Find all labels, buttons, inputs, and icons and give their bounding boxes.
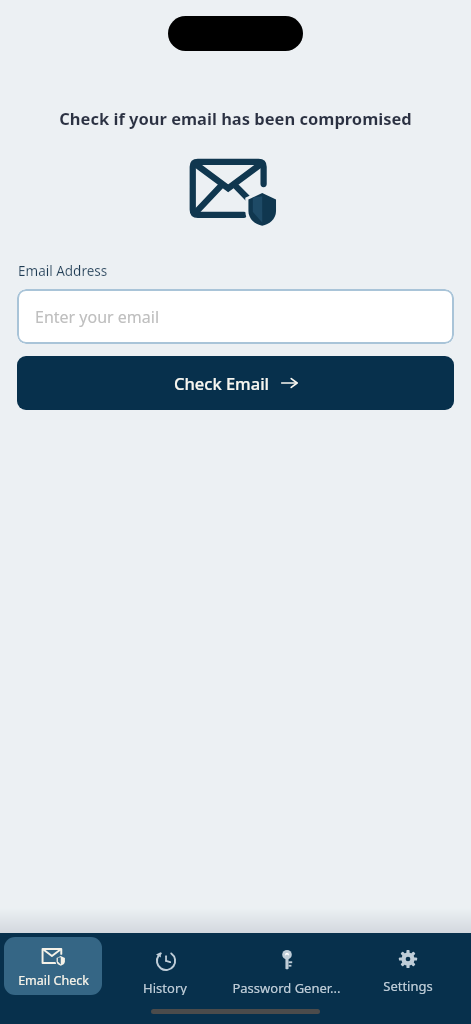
- staticText: Password Gener...: [232, 979, 341, 995]
- staticText: Settings: [383, 977, 433, 995]
- button[interactable]: Check Email: [17, 356, 454, 410]
- button[interactable]: History: [106, 937, 224, 995]
- staticText: Check if your email has been compromised: [0, 107, 471, 129]
- button[interactable]: Settings: [349, 937, 467, 995]
- staticText: Enter your email: [35, 306, 160, 328]
- button[interactable]: Password Gener...: [227, 937, 345, 995]
- button[interactable]: Email Check: [4, 937, 102, 995]
- button[interactable]: Enter your email: [17, 289, 454, 344]
- staticText: Email Address: [18, 262, 108, 280]
- staticText: History: [143, 979, 187, 995]
- staticText: Email Check: [18, 972, 89, 989]
- staticText: Check Email: [174, 372, 270, 394]
